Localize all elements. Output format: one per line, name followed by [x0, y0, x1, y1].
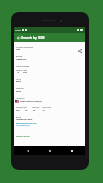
staticText: 16 [17, 71, 20, 73]
staticText: CARD NUMBER [16, 65, 30, 68]
button[interactable]: Share [75, 46, 84, 55]
staticText: CURRENCY [16, 106, 25, 108]
staticText: SEARCH AGAIN [16, 135, 30, 138]
staticText: Visa [16, 48, 21, 51]
staticText: True [23, 71, 27, 73]
staticText: ISO [24, 106, 27, 108]
button[interactable]: Back [15, 33, 23, 42]
staticText: www.jpmorganchase.com [16, 122, 37, 124]
staticText: Debit [16, 80, 22, 83]
staticText: False [16, 90, 22, 93]
staticText: LATITUDE [32, 106, 40, 108]
staticText: BANK [16, 116, 22, 119]
staticText: Traditional [16, 58, 27, 61]
staticText: 38 [33, 109, 36, 111]
staticText: JPMORGAN CHASE [16, 118, 33, 120]
staticText: United States of America [20, 100, 42, 103]
staticText: 12:30 [15, 29, 21, 32]
button[interactable]: Recents [69, 148, 74, 153]
staticText: TYPE [16, 78, 21, 81]
staticText: US [25, 109, 28, 111]
staticText: PREPAID [16, 87, 24, 90]
button[interactable]: Back [25, 148, 30, 153]
staticText: LUHN [23, 69, 28, 71]
staticText: USD [16, 109, 20, 111]
button[interactable]: Home [47, 148, 52, 153]
staticText: LONGITUDE [42, 106, 51, 108]
button[interactable]: SEARCH AGAIN [16, 135, 30, 138]
staticText: +1 800 935 9935 [16, 124, 30, 126]
staticText: Search by ISIN [21, 35, 45, 40]
staticText: COUNTRY [16, 97, 25, 100]
staticText: LENGTH [16, 69, 23, 71]
staticText: ISSUING NETWORK [16, 46, 33, 49]
staticText: BRAND [16, 55, 23, 58]
staticText: -97 [42, 109, 45, 111]
